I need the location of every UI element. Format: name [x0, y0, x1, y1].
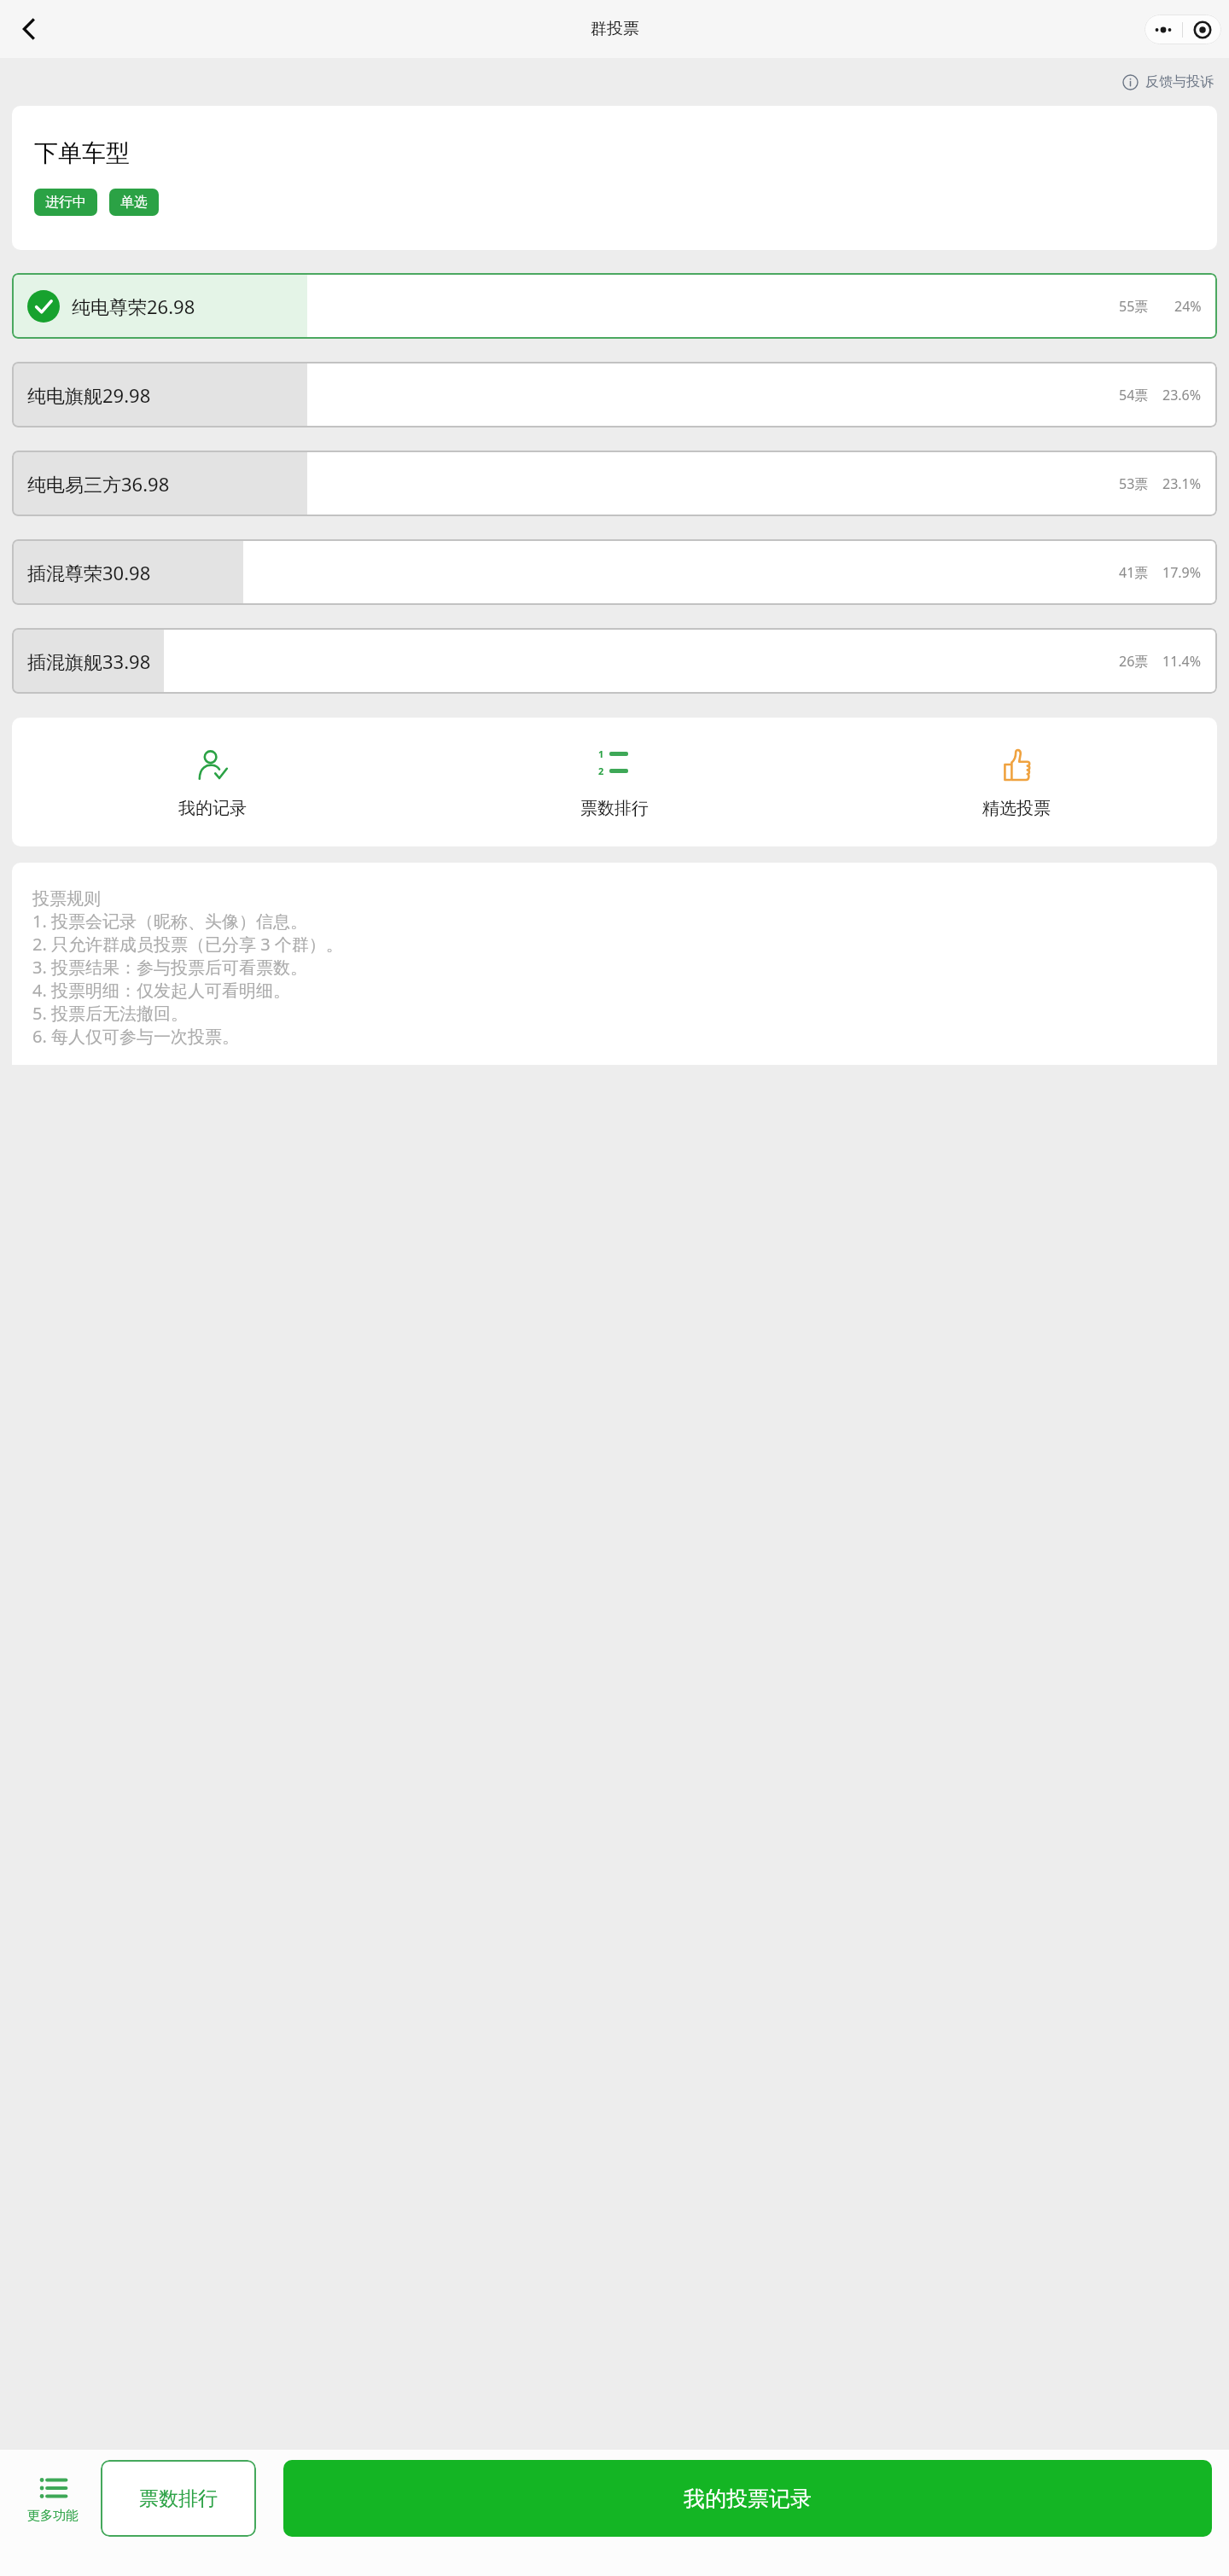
staticText: 投票规则: [32, 888, 101, 910]
button[interactable]: 纯电易三方36.98: [12, 451, 1217, 516]
staticText: 23.1%: [1162, 474, 1202, 493]
staticText: 纯电旗舰29.98: [27, 382, 151, 408]
staticText: 精选投票: [982, 798, 1051, 819]
staticText: 我的记录: [178, 798, 247, 819]
staticText: 插混旗舰33.98: [27, 648, 151, 674]
staticText: 41票: [1119, 563, 1149, 582]
button[interactable]: 反馈与投诉: [1119, 70, 1217, 94]
button[interactable]: 纯电旗舰29.98: [12, 362, 1217, 427]
staticText: 1. 投票会记录（昵称、头像）信息。: [32, 910, 307, 933]
staticText: 17.9%: [1162, 563, 1202, 582]
staticText: 纯电易三方36.98: [27, 471, 170, 497]
staticText: 群投票: [591, 19, 639, 39]
staticText: 54票: [1119, 386, 1149, 404]
button[interactable]: 我的记录: [12, 740, 413, 824]
button[interactable]: 1: [413, 740, 815, 824]
staticText: 单选: [120, 194, 148, 211]
button[interactable]: 更多功能: [10, 2468, 96, 2529]
staticText: 我的投票记录: [684, 2486, 812, 2512]
staticText: 24%: [1174, 297, 1202, 316]
staticText: 2. 只允许群成员投票（已分享 3 个群）。: [32, 933, 343, 956]
staticText: 6. 每人仅可参与一次投票。: [32, 1025, 239, 1048]
button[interactable]: 关闭: [1183, 15, 1221, 44]
staticText: 反馈与投诉: [1145, 73, 1214, 90]
staticText: 票数排行: [580, 798, 649, 819]
button[interactable]: 更多: [1145, 15, 1182, 44]
staticText: 26票: [1119, 652, 1149, 671]
button[interactable]: 票数排行: [101, 2460, 256, 2537]
staticText: 4. 投票明细：仅发起人可看明细。: [32, 979, 290, 1002]
staticText: 插混尊荣30.98: [27, 560, 151, 585]
button[interactable]: 插混尊荣30.98: [12, 539, 1217, 605]
staticText: 5. 投票后无法撤回。: [32, 1002, 188, 1025]
staticText: 11.4%: [1162, 652, 1202, 671]
button[interactable]: 纯电尊荣26.98: [12, 273, 1217, 339]
staticText: 更多功能: [27, 2508, 79, 2524]
staticText: 53票: [1119, 474, 1149, 493]
button[interactable]: 返回: [7, 7, 51, 51]
staticText: 纯电尊荣26.98: [72, 294, 195, 319]
staticText: 23.6%: [1162, 386, 1202, 404]
button[interactable]: 插混旗舰33.98: [12, 628, 1217, 694]
staticText: 票数排行: [139, 2486, 218, 2511]
staticText: 进行中: [45, 194, 86, 211]
button[interactable]: 我的投票记录: [283, 2460, 1212, 2537]
button[interactable]: 下单车型: [12, 106, 1217, 250]
staticText: 55票: [1119, 297, 1149, 316]
staticText: 1: [598, 747, 604, 760]
staticText: 2: [598, 765, 604, 777]
button[interactable]: 精选投票: [815, 740, 1217, 824]
staticText: 下单车型: [34, 138, 130, 168]
staticText: 3. 投票结果：参与投票后可看票数。: [32, 956, 307, 979]
